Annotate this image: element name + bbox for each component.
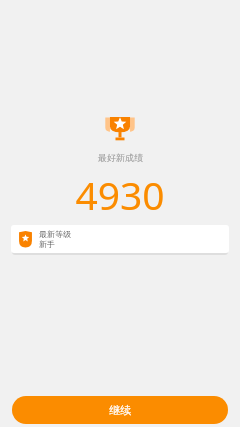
button[interactable]: 最新等级 xyxy=(11,225,229,253)
staticText: 继续 xyxy=(109,403,131,417)
staticText: 最好新成绩 xyxy=(98,152,143,163)
other: Best score trophy xyxy=(105,114,135,142)
staticText: 新手 xyxy=(39,239,55,249)
staticText: 你的得分 xyxy=(104,224,136,234)
staticText: 4930 xyxy=(75,168,165,221)
button[interactable]: 继续 xyxy=(12,396,228,424)
staticText: 最新等级 xyxy=(39,229,71,239)
